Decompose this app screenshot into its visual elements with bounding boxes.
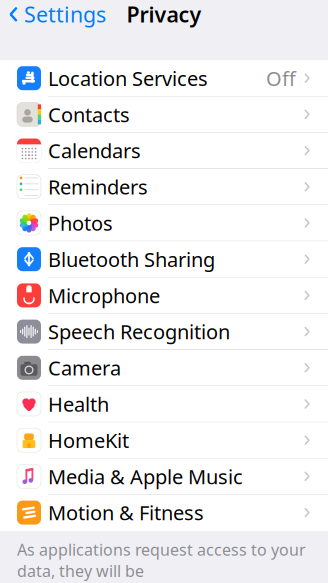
staticText: Photos: [48, 210, 113, 236]
button[interactable]: Contacts: [0, 96, 328, 133]
button[interactable]: Location Services: [0, 60, 328, 96]
button[interactable]: Media & Apple Music: [0, 458, 328, 495]
staticText: Location Services: [48, 65, 208, 91]
staticText: Off: [266, 65, 296, 91]
button[interactable]: Calendars: [0, 133, 328, 169]
staticText: Reminders: [48, 173, 148, 200]
button[interactable]: Photos: [0, 205, 328, 241]
staticText: Settings: [24, 0, 106, 28]
staticText: Calendars: [48, 137, 141, 164]
staticText: Camera: [48, 354, 121, 381]
staticText: Health: [48, 391, 109, 417]
staticText: HomeKit: [48, 427, 129, 453]
button[interactable]: Settings: [0, 0, 106, 34]
button[interactable]: HomeKit: [0, 422, 328, 458]
button[interactable]: Speech Recognition: [0, 314, 328, 350]
staticText: Microphone: [48, 282, 160, 309]
staticText: Media & Apple Music: [48, 463, 243, 490]
button[interactable]: Reminders: [0, 169, 328, 205]
button[interactable]: Motion & Fitness: [0, 495, 328, 531]
staticText: Speech Recognition: [48, 318, 230, 345]
staticText: As applications request access to your d…: [17, 539, 306, 581]
staticText: Bluetooth Sharing: [48, 246, 215, 272]
staticText: Motion & Fitness: [48, 499, 204, 526]
button[interactable]: Bluetooth Sharing: [0, 241, 328, 277]
button[interactable]: Microphone: [0, 277, 328, 314]
staticText: Contacts: [48, 101, 130, 128]
staticText: Privacy: [126, 0, 201, 28]
button[interactable]: Health: [0, 386, 328, 422]
button[interactable]: Camera: [0, 350, 328, 386]
